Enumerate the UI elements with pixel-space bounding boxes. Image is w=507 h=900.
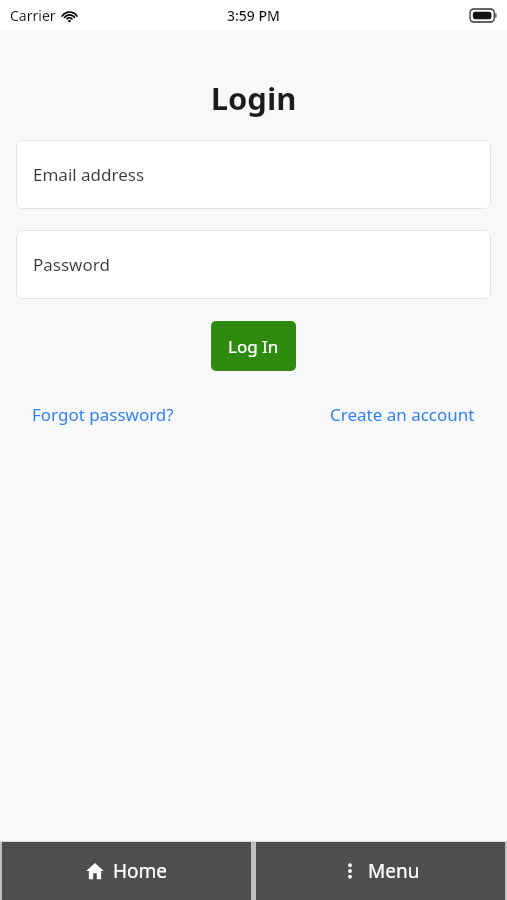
staticText: Create an account <box>330 403 475 426</box>
staticText: 3:59 PM <box>227 6 280 25</box>
staticText: Carrier <box>10 6 56 25</box>
button[interactable]: Log In <box>211 321 296 371</box>
staticText: Email address <box>33 163 145 186</box>
button[interactable]: Email address <box>16 140 491 209</box>
other: Menu <box>341 862 359 880</box>
staticText: Forgot password? <box>32 403 174 426</box>
button[interactable]: Menu <box>256 842 505 900</box>
other: Home <box>86 862 104 880</box>
button[interactable]: Home <box>2 842 251 900</box>
button[interactable]: Create an account <box>314 397 491 432</box>
staticText: Menu <box>368 858 420 884</box>
staticText: Home <box>113 858 168 884</box>
button[interactable]: Forgot password? <box>16 397 190 432</box>
staticText: Log In <box>228 335 279 358</box>
staticText: Login <box>0 77 507 119</box>
staticText: Password <box>33 253 110 276</box>
button[interactable]: Password <box>16 230 491 299</box>
